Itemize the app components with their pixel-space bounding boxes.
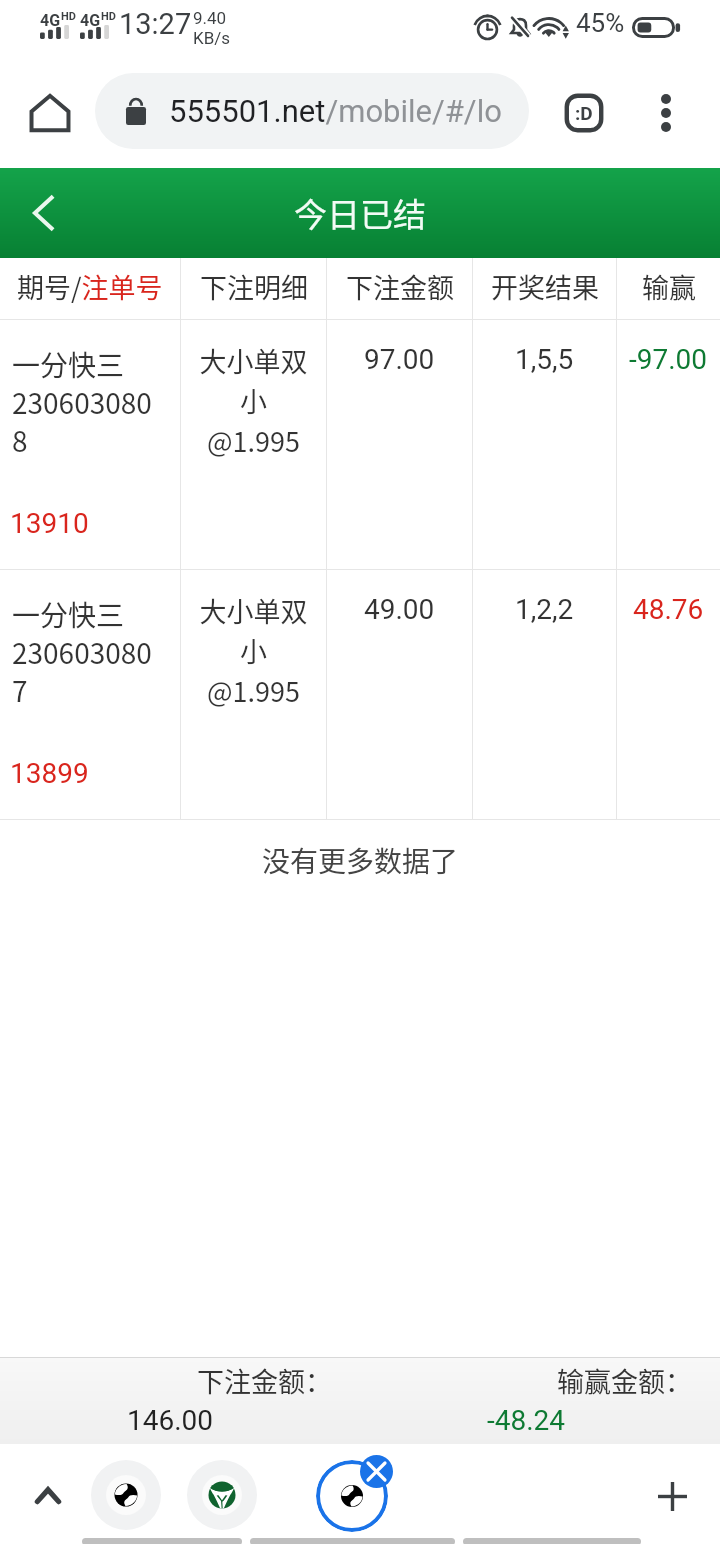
staticText: 一分快三 2306030807 — [12, 594, 152, 711]
staticText: 今日已结 — [294, 189, 426, 237]
button[interactable]: Tab — [91, 1460, 161, 1530]
staticText: 49.00 — [364, 593, 435, 626]
staticText: HD — [101, 10, 116, 23]
staticText: HD — [61, 10, 76, 23]
button[interactable]: Close tab — [360, 1455, 393, 1488]
staticText: -48.24 — [487, 1404, 566, 1437]
staticText: 4G — [80, 11, 101, 30]
button[interactable]: Home — [16, 58, 84, 168]
staticText: 期号/注单号 — [17, 267, 163, 306]
button[interactable]: Tabs — [552, 58, 616, 168]
staticText: 大小单双 小 @1.995 — [181, 591, 326, 710]
button[interactable]: 555501.net/mobile/#/lo — [95, 73, 529, 149]
button[interactable]: New tab — [638, 1459, 706, 1533]
staticText: 大小单双 小 @1.995 — [181, 341, 326, 460]
button[interactable]: Back — [0, 168, 88, 258]
staticText: 4G — [40, 11, 61, 30]
button[interactable]: Tab — [187, 1460, 257, 1530]
staticText: 97.00 — [364, 343, 435, 376]
button[interactable]: More options — [634, 58, 698, 168]
staticText: 没有更多数据了 — [262, 840, 459, 881]
staticText: 9.40 — [193, 8, 227, 28]
staticText: 45% — [576, 8, 625, 38]
staticText: 输赢 — [642, 267, 696, 306]
staticText: -97.00 — [629, 343, 708, 376]
staticText: 13910 — [10, 507, 89, 540]
staticText: 开奖结果 — [491, 267, 599, 306]
staticText: 下注金额： — [197, 1361, 332, 1400]
staticText: 一分快三 2306030808 — [12, 344, 152, 461]
staticText: KB/s — [193, 28, 231, 48]
staticText: 146.00 — [127, 1404, 214, 1437]
staticText: 555501.net/mobile/#/lo — [169, 93, 502, 129]
staticText: :D — [575, 102, 593, 124]
staticText: 下注明细 — [200, 267, 308, 306]
staticText: 1,5,5 — [515, 343, 574, 376]
button[interactable]: Expand toolbar — [14, 1458, 82, 1532]
button[interactable]: Current tab — [316, 1460, 388, 1532]
staticText: 1,2,2 — [515, 593, 574, 626]
staticText: 下注金额 — [346, 267, 454, 306]
staticText: 48.76 — [633, 593, 704, 626]
staticText: 13:27 — [119, 7, 192, 41]
staticText: 13899 — [10, 757, 89, 790]
staticText: 输赢金额： — [557, 1361, 692, 1400]
